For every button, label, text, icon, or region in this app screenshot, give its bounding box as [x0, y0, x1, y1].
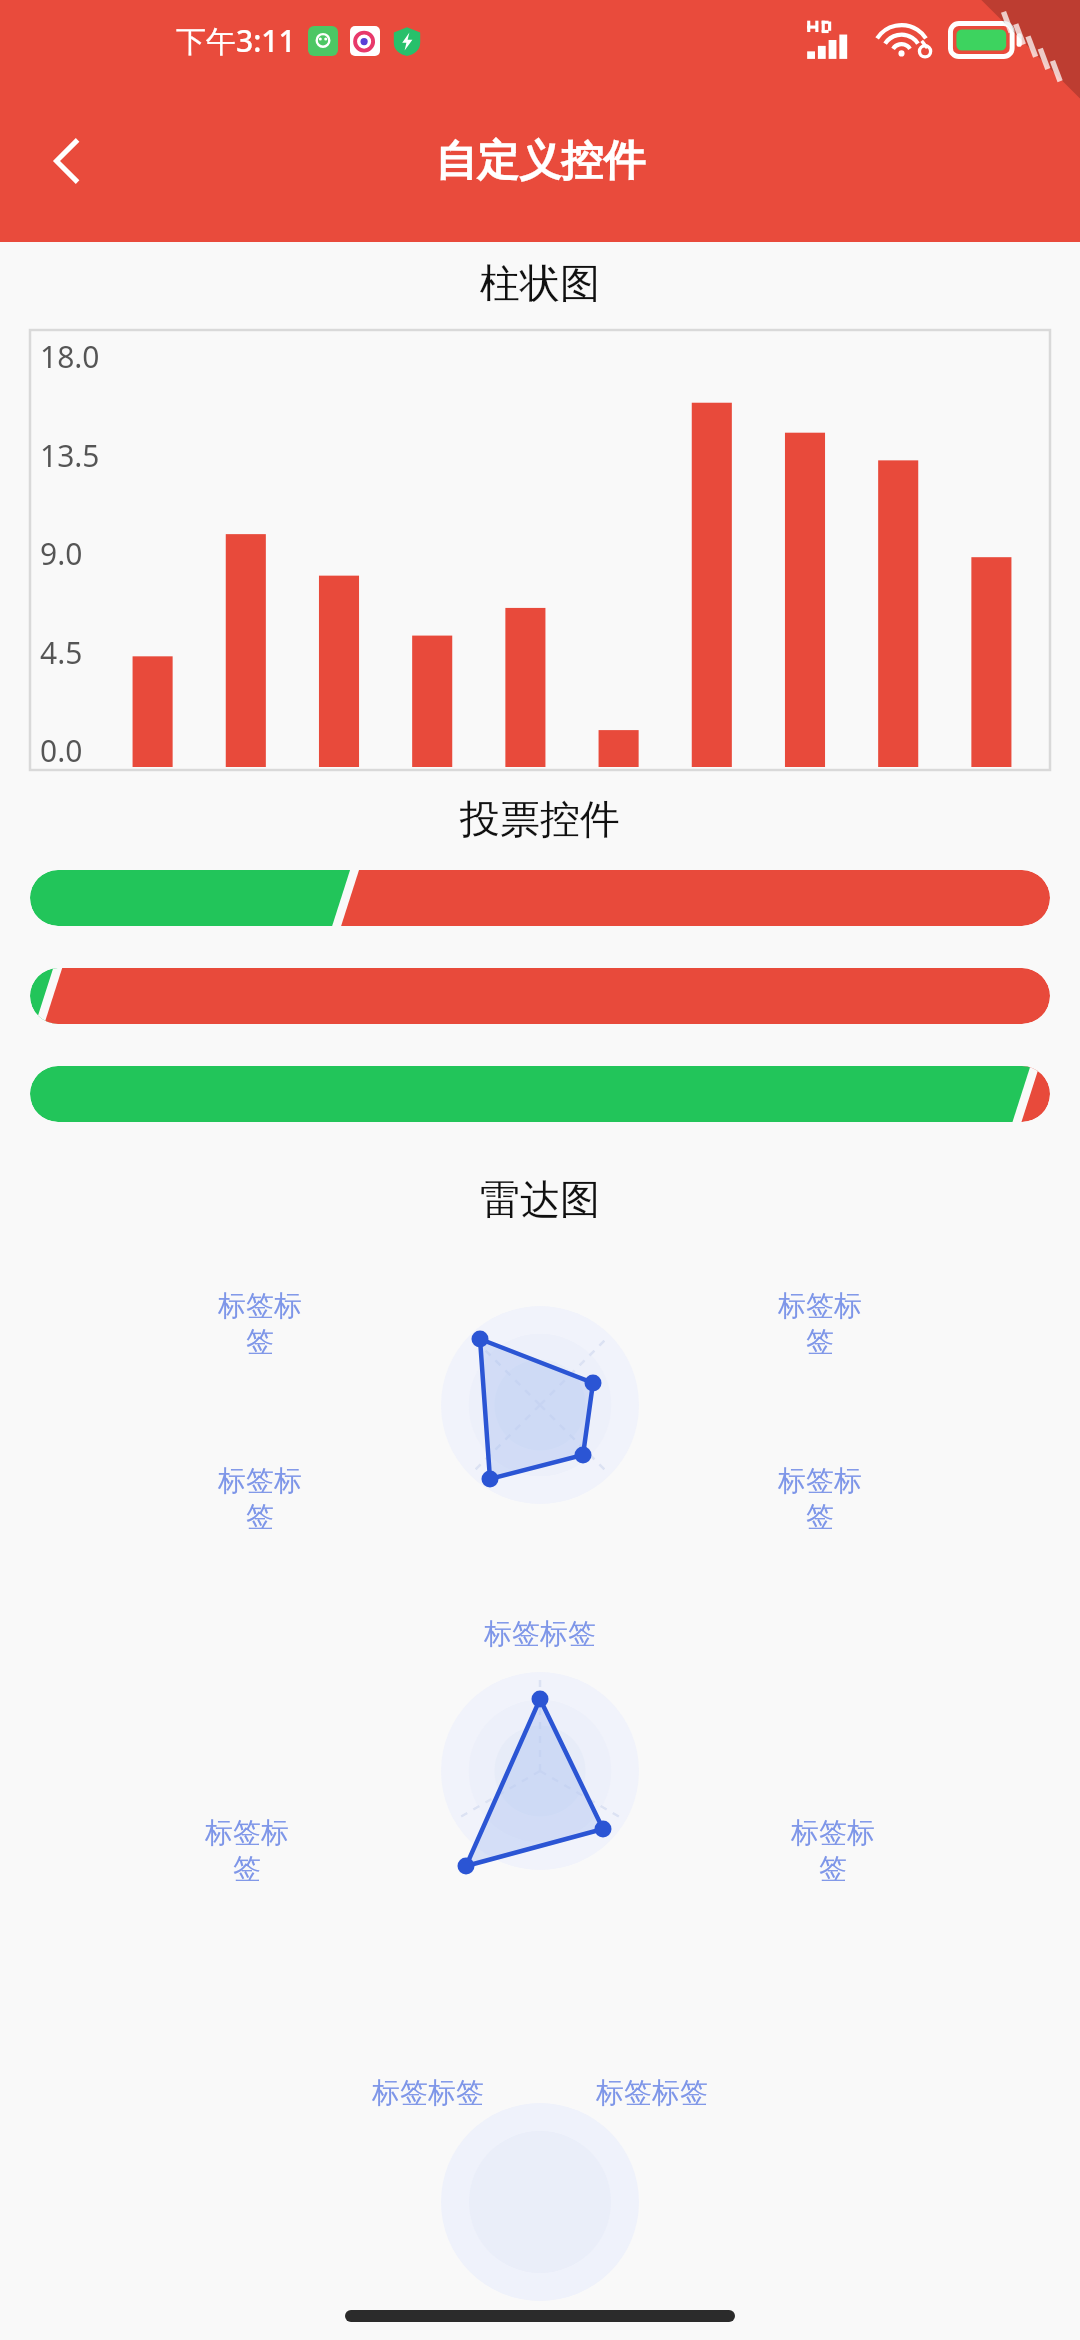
- button[interactable]: 标签标签: [0, 1950, 1080, 2120]
- staticText: 自定义控件: [435, 135, 645, 188]
- button[interactable]: 标签标签: [0, 1596, 1080, 1926]
- button[interactable]: 标签标 签: [0, 1240, 1080, 1570]
- staticText: 9.0: [40, 533, 83, 574]
- staticText: 0.0: [40, 730, 83, 771]
- staticText: 13.5: [40, 435, 100, 476]
- staticText: 投票控件: [0, 794, 1080, 844]
- staticText: 标签标签: [484, 1616, 596, 1651]
- staticText: 标签标 签: [205, 1815, 289, 1886]
- staticText: 标签标签: [596, 2075, 708, 2110]
- button[interactable]: 返回: [20, 113, 116, 209]
- staticText: 标签标 签: [218, 1463, 302, 1534]
- button[interactable]: 18.0: [30, 330, 1050, 770]
- button[interactable]: [30, 1066, 1050, 1122]
- button[interactable]: [30, 870, 1050, 926]
- staticText: 标签标 签: [778, 1288, 862, 1359]
- button[interactable]: [30, 968, 1050, 1024]
- staticText: 标签标 签: [791, 1815, 875, 1886]
- staticText: 标签标签: [372, 2075, 484, 2110]
- staticText: 雷达图: [0, 1174, 1080, 1224]
- staticText: 柱状图: [0, 258, 1080, 308]
- staticText: 标签标 签: [218, 1288, 302, 1359]
- staticText: 标签标 签: [778, 1463, 862, 1534]
- staticText: 4.5: [40, 632, 83, 673]
- staticText: 下午3:11: [176, 20, 296, 61]
- staticText: 18.0: [40, 336, 100, 377]
